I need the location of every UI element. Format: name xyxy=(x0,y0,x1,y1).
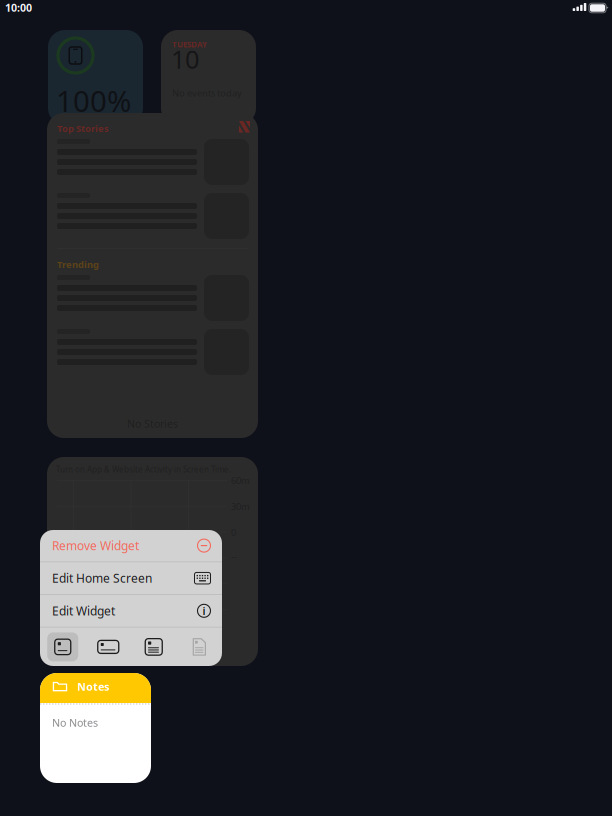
staticText: Edit Widget xyxy=(52,603,115,619)
staticText: 10:00 xyxy=(5,0,32,15)
staticText: i xyxy=(202,604,205,618)
staticText: Notes xyxy=(77,679,109,694)
staticText: TUESDAY xyxy=(172,39,207,50)
button[interactable]: News widget xyxy=(47,113,258,438)
button[interactable]: Battery widget xyxy=(48,30,143,125)
button[interactable]: Remove Widget xyxy=(40,530,222,562)
button[interactable]: Edit Home Screen xyxy=(40,562,222,594)
button[interactable]: Widget size option xyxy=(131,627,176,666)
staticText: 0 xyxy=(231,526,236,539)
staticText: Top Stories xyxy=(57,122,109,135)
staticText: 100% xyxy=(56,81,131,120)
staticText: No Stories xyxy=(127,416,178,431)
button[interactable]: Notes widget xyxy=(40,673,151,783)
staticText: 60m xyxy=(231,474,250,487)
staticText: Trending xyxy=(57,258,99,271)
button[interactable]: Widget size option xyxy=(176,627,222,666)
button[interactable]: Edit Widget xyxy=(40,595,222,627)
staticText: 10 xyxy=(171,42,199,76)
staticText: No Notes xyxy=(52,715,98,730)
staticText: 30m xyxy=(231,500,250,513)
button[interactable]: Widget size option xyxy=(85,627,131,666)
button[interactable]: Screen Time widget xyxy=(47,457,258,666)
button[interactable]: Widget size option xyxy=(40,627,85,666)
staticText: Remove Widget xyxy=(52,538,139,553)
button[interactable]: Calendar widget xyxy=(161,30,256,125)
staticText: Edit Home Screen xyxy=(52,570,152,586)
